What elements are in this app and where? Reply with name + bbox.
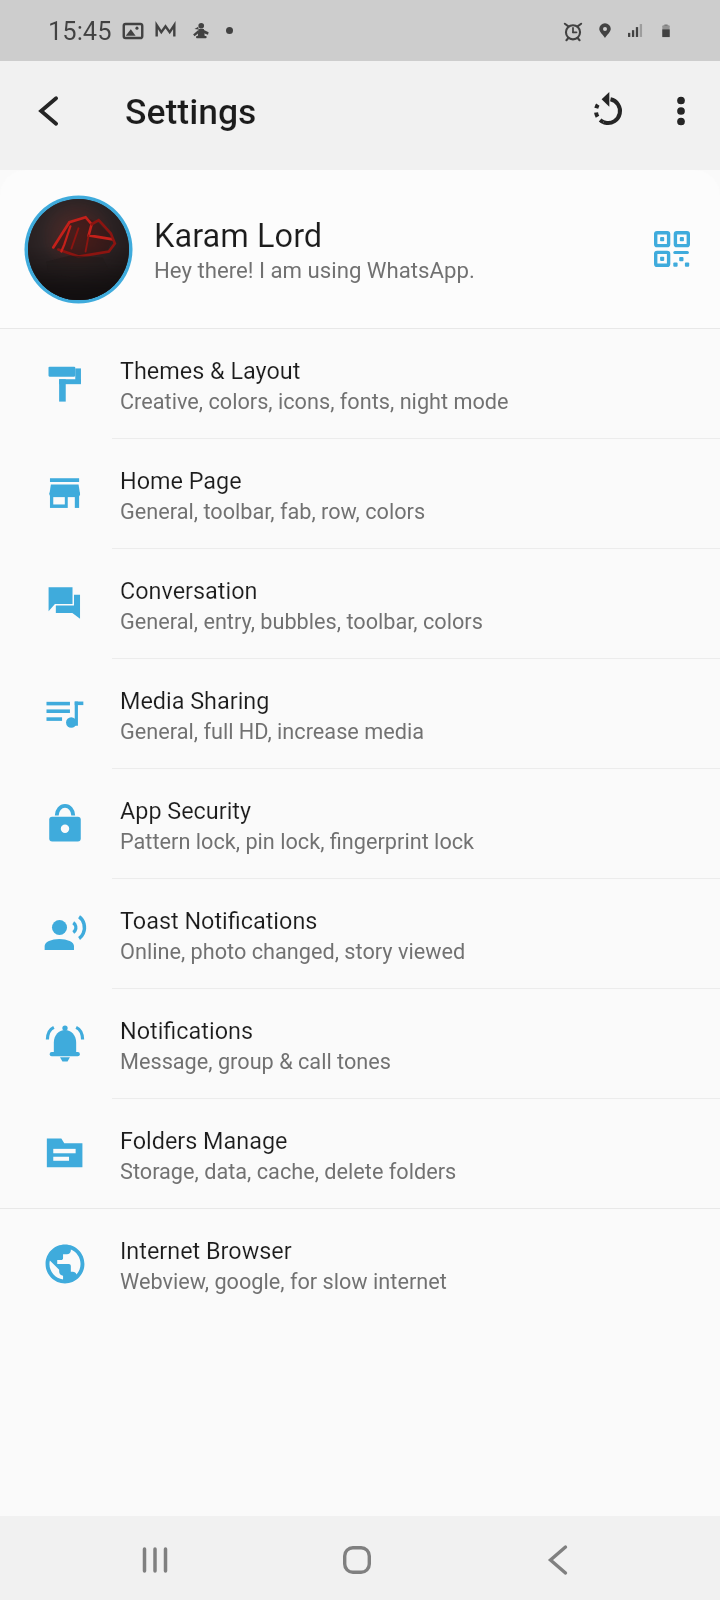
staticText: Folders Manage	[120, 1127, 288, 1154]
button[interactable]: Navigate up	[18, 81, 78, 141]
staticText: Toast Notifications	[120, 907, 318, 934]
button[interactable]: Back	[518, 1520, 598, 1600]
staticText: Webview, google, for slow internet	[120, 1269, 447, 1294]
staticText: Media Sharing	[120, 687, 270, 714]
button[interactable]: App Security	[0, 769, 720, 878]
staticText: Creative, colors, icons, fonts, night mo…	[120, 389, 509, 414]
staticText: Settings	[125, 91, 257, 133]
button[interactable]: Internet Browser	[0, 1209, 720, 1318]
staticText: Internet Browser	[120, 1237, 292, 1264]
staticText: Pattern lock, pin lock, fingerprint lock	[120, 829, 475, 854]
button[interactable]: Conversation	[0, 549, 720, 658]
staticText: General, toolbar, fab, row, colors	[120, 499, 426, 524]
staticText: General, full HD, increase media	[120, 719, 425, 744]
button[interactable]: Home Page	[0, 439, 720, 548]
staticText: Hey there! I am using WhatsApp.	[154, 257, 475, 283]
staticText: Karam Lord	[154, 217, 323, 255]
staticText: Notifications	[120, 1017, 253, 1044]
button[interactable]: Media Sharing	[0, 659, 720, 768]
staticText: Storage, data, cache, delete folders	[120, 1159, 457, 1184]
staticText: 15:45	[48, 16, 112, 46]
button[interactable]: Karam Lord	[0, 170, 720, 328]
staticText: General, entry, bubbles, toolbar, colors	[120, 609, 483, 634]
staticText: App Security	[120, 797, 252, 824]
staticText: Themes & Layout	[120, 357, 301, 384]
button[interactable]: Folders Manage	[0, 1099, 720, 1208]
staticText: Home Page	[120, 467, 242, 494]
button[interactable]: Recent apps	[115, 1520, 195, 1600]
staticText: Message, group & call tones	[120, 1049, 392, 1074]
button[interactable]: Toast Notifications	[0, 879, 720, 988]
button[interactable]: Restore defaults	[577, 80, 639, 142]
button[interactable]: Home	[317, 1520, 397, 1600]
staticText: Online, photo changed, story viewed	[120, 939, 466, 964]
staticText: Conversation	[120, 577, 258, 604]
button[interactable]: QR code	[641, 218, 703, 280]
button[interactable]: More options	[650, 80, 712, 142]
button[interactable]: Themes & Layout	[0, 329, 720, 438]
button[interactable]: Notifications	[0, 989, 720, 1098]
